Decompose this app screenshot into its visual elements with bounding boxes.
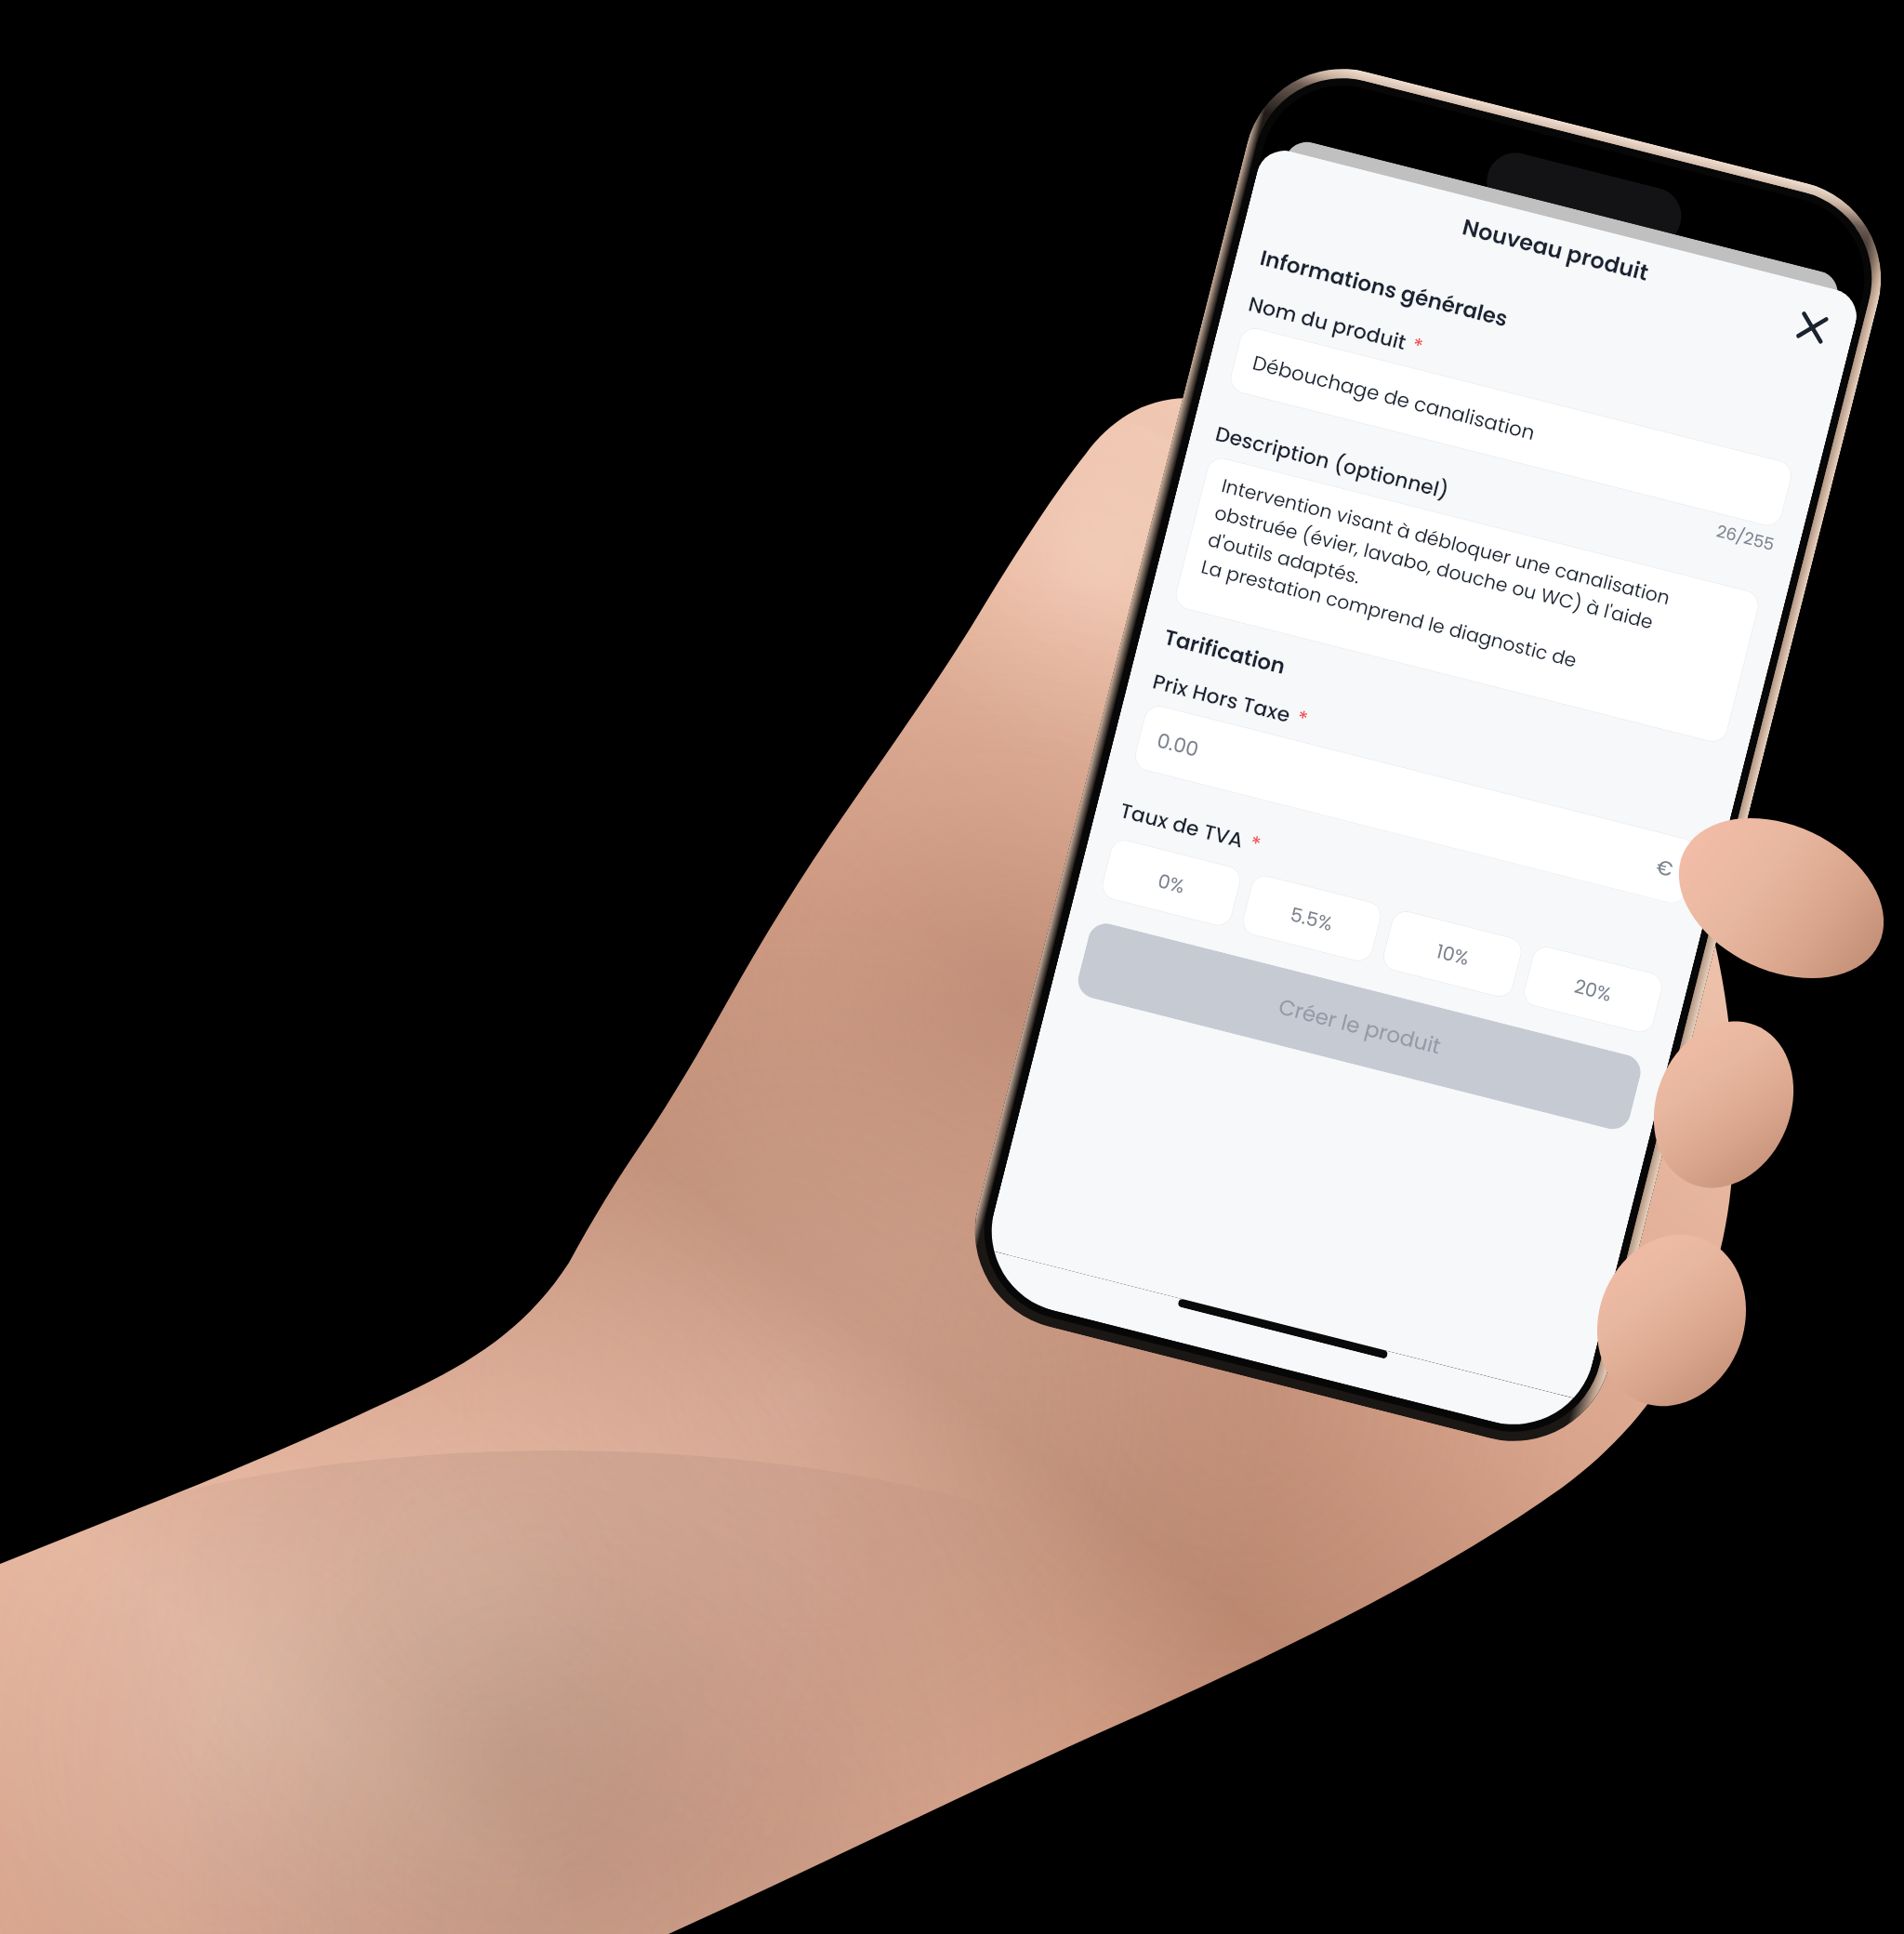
button[interactable]: 20%	[1521, 943, 1665, 1036]
button[interactable]: Débouchage de canalisation	[1227, 325, 1795, 529]
staticText: Nom du produit	[1245, 289, 1409, 357]
staticText: Débouchage de canalisation	[1250, 348, 1538, 446]
staticText: Informations générales	[1257, 243, 1511, 334]
staticText: 10%	[1434, 938, 1472, 972]
button[interactable]: 5.5%	[1239, 872, 1384, 965]
button[interactable]: 0.00	[1131, 702, 1699, 907]
button[interactable]: Fermer	[1788, 303, 1837, 352]
staticText: *	[1294, 704, 1311, 734]
staticText: Nouveau produit	[1459, 211, 1652, 289]
staticText: 5.5%	[1288, 901, 1336, 937]
button[interactable]: Créer le produit	[1074, 920, 1645, 1133]
staticText: *	[1409, 331, 1426, 362]
staticText: Créer le produit	[1276, 992, 1444, 1061]
staticText: Prix Hors Taxe	[1150, 667, 1294, 730]
staticText: 20%	[1572, 972, 1615, 1008]
staticText: Tarification	[1161, 622, 1289, 682]
staticText: 0%	[1155, 867, 1188, 900]
staticText: Taux de TVA	[1117, 796, 1247, 855]
button[interactable]: 10%	[1380, 908, 1525, 1000]
staticText: Intervention visant à débloquer une cana…	[1198, 472, 1673, 692]
staticText: 0.00	[1154, 726, 1660, 879]
staticText: Description (optionnel)	[1212, 419, 1452, 506]
staticText: €	[1654, 852, 1677, 883]
staticText: 26/255	[1714, 519, 1777, 556]
staticText: *	[1247, 829, 1264, 859]
button[interactable]: Intervention visant à débloquer une cana…	[1172, 454, 1762, 746]
button[interactable]: 0%	[1099, 837, 1244, 929]
